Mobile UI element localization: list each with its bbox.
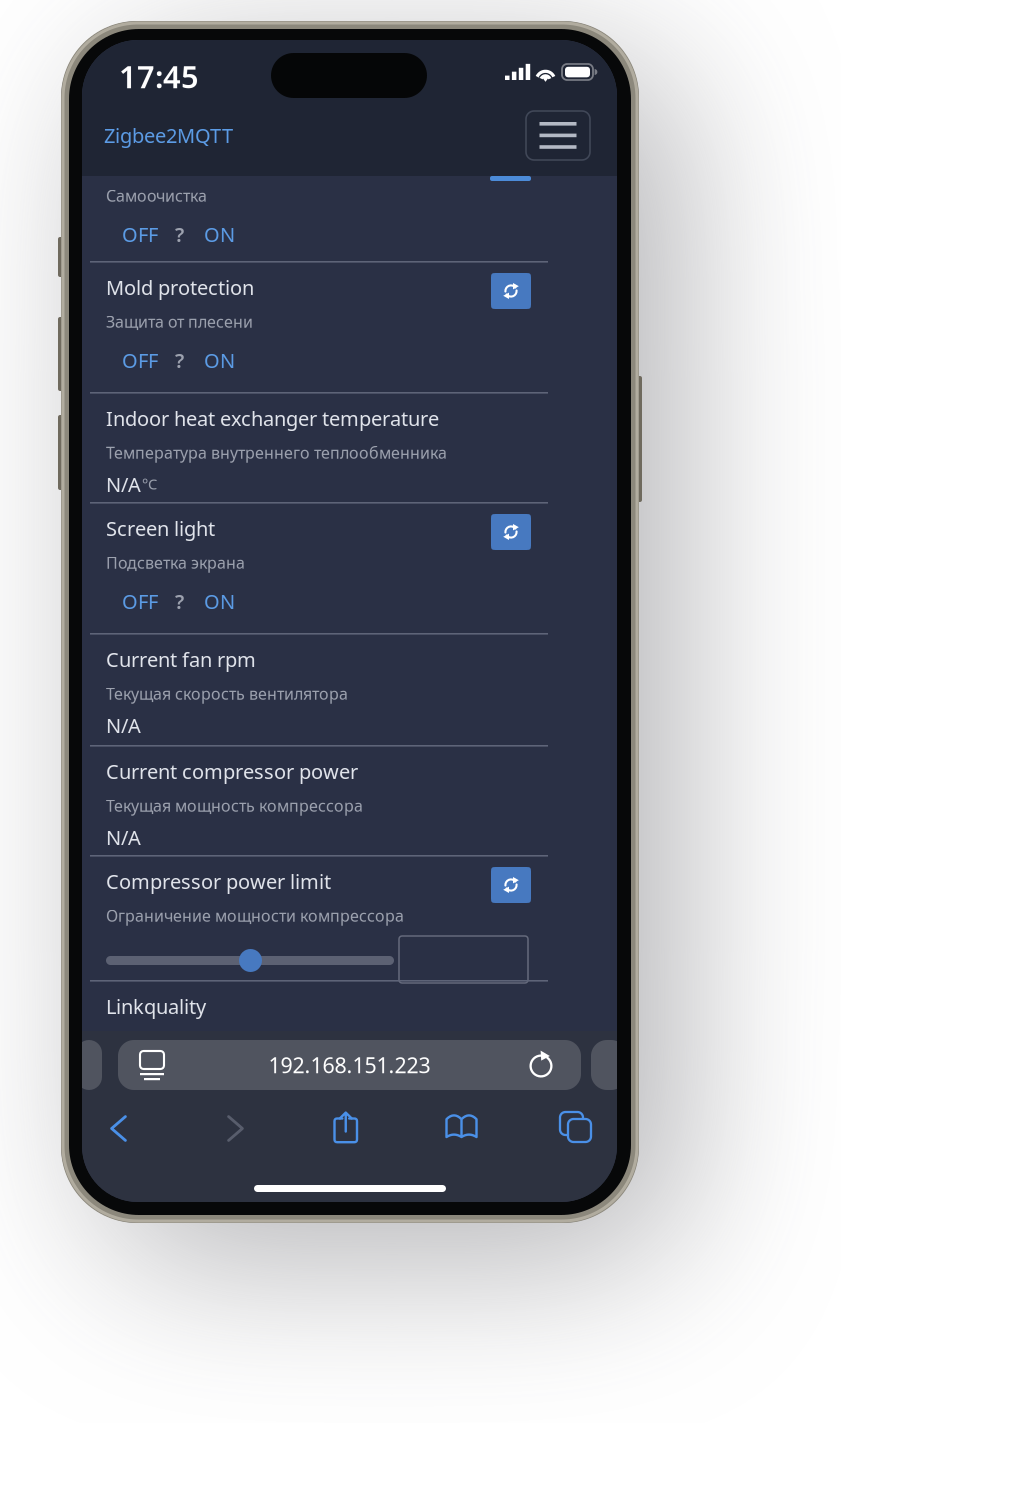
staticText: ON [204,221,235,248]
staticText: Текущая мощность компрессора [106,795,363,816]
staticText: Compressor power limit [106,868,331,895]
button[interactable]: Share [333,1111,359,1144]
button[interactable]: Refresh [491,514,531,550]
staticText: Самоочистка [106,185,207,206]
button[interactable]: ON [200,585,239,618]
staticText: 192.168.151.223 [268,1051,430,1079]
staticText: 17:45 [119,56,199,97]
staticText: OFF [122,347,158,374]
staticText: ? [175,221,184,248]
staticText: Mold protection [106,274,254,301]
staticText: ? [175,588,184,615]
staticText: Текущая скорость вентилятора [106,683,348,704]
button[interactable]: OFF [118,218,162,251]
staticText: Ограничение мощности компрессора [106,905,404,926]
staticText: Linkquality [106,993,206,1020]
staticText: Indoor heat exchanger temperature [106,405,439,432]
button[interactable]: ON [200,344,239,377]
staticText: Температура внутреннего теплообменника [106,442,447,463]
staticText: N/A [106,712,141,739]
button[interactable]: Forward [227,1115,244,1142]
staticText: ? [175,347,184,374]
button[interactable]: Tabs [560,1112,591,1142]
button[interactable]: Refresh [491,273,531,309]
button[interactable]: Refresh [491,867,531,903]
button[interactable]: Menu [526,111,590,160]
staticText: °C [142,474,157,493]
button[interactable]: Zigbee2MQTT [98,114,239,157]
staticText: OFF [122,588,158,615]
staticText: Защита от плесени [106,311,253,332]
staticText: Zigbee2MQTT [104,122,233,149]
button[interactable]: OFF [118,585,162,618]
button[interactable]: 192.168.151.223 [118,1040,581,1090]
staticText: Подсветка экрана [106,552,245,573]
staticText: OFF [122,221,158,248]
staticText: Screen light [106,515,215,542]
button[interactable]: ON [200,218,239,251]
staticText: Current compressor power [106,758,358,785]
staticText: Current fan rpm [106,646,256,673]
button[interactable]: Back [110,1115,127,1142]
staticText: N/A [106,471,141,498]
staticText: N/A [106,824,141,851]
button[interactable]: OFF [118,344,162,377]
button[interactable]: Bookmarks [445,1114,478,1141]
staticText: ON [204,588,235,615]
staticText: ON [204,347,235,374]
